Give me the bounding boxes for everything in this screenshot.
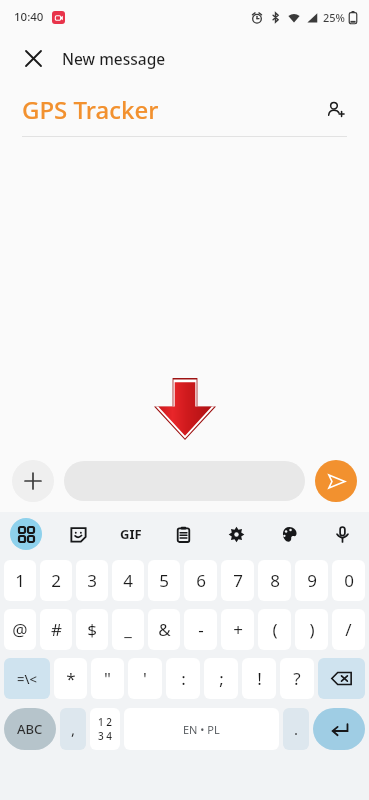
button[interactable]: ( xyxy=(258,609,291,650)
button[interactable]: 6 xyxy=(184,560,217,601)
button[interactable]: ? xyxy=(280,658,314,699)
staticText: 3 xyxy=(87,569,97,592)
button[interactable]: EN • PL xyxy=(124,708,279,750)
staticText: ' xyxy=(143,667,147,690)
staticText: & xyxy=(158,618,171,641)
button[interactable]: Add contact xyxy=(317,91,353,127)
staticText: # xyxy=(51,618,62,641)
button[interactable]: Text message xyxy=(64,461,305,501)
button[interactable]: GIF xyxy=(104,512,157,556)
staticText: 4 xyxy=(123,569,133,592)
staticText: GIF xyxy=(120,525,142,543)
button[interactable]: Close xyxy=(16,41,50,75)
staticText: * xyxy=(66,667,76,690)
button[interactable]: + xyxy=(221,609,254,650)
staticText: . xyxy=(294,719,299,739)
button[interactable]: Themes xyxy=(263,512,316,556)
staticText: GPS Tracker xyxy=(22,93,317,126)
button[interactable]: ) xyxy=(295,609,328,650)
staticText: ? xyxy=(293,667,301,690)
staticText: @ xyxy=(12,618,28,641)
button[interactable]: # xyxy=(40,609,72,650)
staticText: 2 xyxy=(51,569,61,592)
button[interactable]: ! xyxy=(242,658,276,699)
button[interactable]: _ xyxy=(112,609,144,650)
button[interactable]: Backspace xyxy=(318,658,365,699)
staticText: 1 xyxy=(15,569,25,592)
staticText: 6 xyxy=(196,569,206,592)
button[interactable]: , xyxy=(60,708,86,750)
staticText: ! xyxy=(257,667,262,690)
button[interactable]: @ xyxy=(4,609,36,650)
staticText: 1 2 xyxy=(98,715,113,729)
staticText: ( xyxy=(272,618,278,641)
staticText: 7 xyxy=(233,569,243,592)
button[interactable]: ' xyxy=(128,658,162,699)
staticText: $ xyxy=(87,618,97,641)
button[interactable]: : xyxy=(166,658,200,699)
button[interactable]: Settings xyxy=(210,512,263,556)
button[interactable]: Voice input xyxy=(316,512,369,556)
button[interactable]: 4 xyxy=(112,560,144,601)
button[interactable]: Keyboard apps xyxy=(0,512,52,556)
staticText: " xyxy=(104,667,111,690)
staticText: ) xyxy=(309,618,315,641)
staticText: + xyxy=(233,618,243,641)
button[interactable]: 0 xyxy=(332,560,365,601)
button[interactable]: Clipboard xyxy=(157,512,210,556)
staticText: 5 xyxy=(159,569,169,592)
staticText: 25% xyxy=(323,10,345,25)
staticText: ; xyxy=(219,667,224,690)
staticText: / xyxy=(345,618,352,641)
staticText: 10:40 xyxy=(14,9,44,25)
button[interactable]: / xyxy=(332,609,365,650)
staticText: ABC xyxy=(17,720,43,738)
button[interactable]: ABC xyxy=(4,708,56,750)
staticText: 9 xyxy=(307,569,317,592)
staticText: 0 xyxy=(344,569,354,592)
button[interactable]: 3 xyxy=(76,560,108,601)
button[interactable]: 5 xyxy=(148,560,180,601)
button[interactable]: =\< xyxy=(4,658,50,699)
button[interactable]: Enter xyxy=(313,708,365,750)
button[interactable]: Stickers xyxy=(52,512,104,556)
button[interactable]: - xyxy=(184,609,217,650)
button[interactable]: " xyxy=(91,658,124,699)
button[interactable]: $ xyxy=(76,609,108,650)
button[interactable]: 7 xyxy=(221,560,254,601)
button[interactable]: 2 xyxy=(40,560,72,601)
button[interactable]: * xyxy=(54,658,87,699)
button[interactable]: 1 xyxy=(4,560,36,601)
staticText: New message xyxy=(62,48,166,69)
button[interactable]: & xyxy=(148,609,180,650)
staticText: =\< xyxy=(17,670,37,688)
staticText: 8 xyxy=(270,569,280,592)
staticText: EN • PL xyxy=(183,722,220,737)
button[interactable]: ; xyxy=(204,658,238,699)
button[interactable]: Numbers xyxy=(90,708,120,750)
button[interactable]: Add attachment xyxy=(12,460,54,502)
staticText: : xyxy=(181,667,186,690)
button[interactable]: 9 xyxy=(295,560,328,601)
staticText: 3 4 xyxy=(98,729,113,743)
staticText: , xyxy=(71,719,76,739)
staticText: _ xyxy=(124,618,132,641)
button[interactable]: . xyxy=(283,708,309,750)
button[interactable]: 8 xyxy=(258,560,291,601)
button[interactable]: Send xyxy=(315,460,357,502)
staticText: - xyxy=(198,618,204,641)
